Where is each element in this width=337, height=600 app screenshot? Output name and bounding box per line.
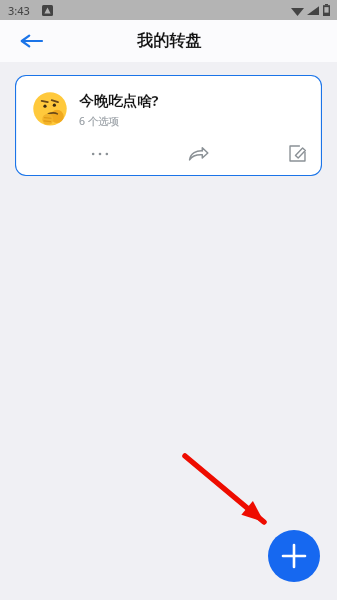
button[interactable]: More options — [78, 141, 122, 167]
button[interactable]: Share — [183, 139, 213, 169]
button[interactable]: Add wheel — [268, 530, 320, 582]
staticText: 3:43 — [8, 3, 30, 18]
staticText: 6 个选项 — [79, 114, 120, 128]
staticText: 今晚吃点啥? — [79, 90, 159, 110]
staticText: 我的转盘 — [137, 31, 201, 51]
button[interactable]: Back — [16, 26, 46, 56]
button[interactable]: 今晚吃点啥? — [15, 75, 322, 176]
button[interactable]: Edit — [282, 138, 312, 168]
